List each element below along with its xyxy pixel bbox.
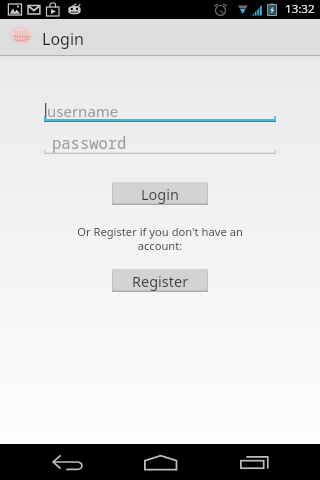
staticText: Login <box>42 28 84 50</box>
staticText: username <box>47 101 119 121</box>
button[interactable]: Recent apps <box>217 444 293 480</box>
staticText: Login <box>141 184 179 204</box>
button[interactable]: Back <box>30 444 106 480</box>
staticText: 13:32 <box>285 1 315 17</box>
button[interactable]: Login <box>112 182 208 205</box>
staticText: password <box>52 132 127 153</box>
staticText: Register <box>132 271 189 291</box>
button[interactable]: Register <box>112 269 208 292</box>
button[interactable]: Home <box>123 444 199 480</box>
staticText: Or Register if you don't have an account… <box>60 224 260 254</box>
